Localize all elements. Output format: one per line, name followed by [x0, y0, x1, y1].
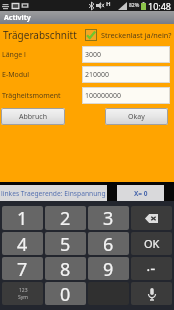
button[interactable]: 6 — [88, 232, 129, 255]
button[interactable]: 3000 — [82, 46, 170, 63]
staticText: 0 — [60, 282, 71, 305]
staticText: Sym — [18, 294, 28, 301]
staticText: 4 — [17, 232, 28, 255]
button[interactable]: 0 — [45, 282, 86, 305]
staticText: 2 — [60, 206, 71, 230]
button[interactable]: 1 — [2, 206, 43, 230]
staticText: OK — [144, 236, 160, 251]
staticText: Abbruch — [19, 112, 47, 122]
staticText: 9 — [103, 257, 114, 280]
button[interactable]: Streckenlast ja/nein? — [85, 29, 174, 41]
staticText: 82% — [129, 2, 140, 9]
button[interactable]: Okay — [105, 108, 168, 125]
staticText: 210000 — [85, 70, 110, 80]
button[interactable]: X= 0 — [117, 185, 164, 201]
staticText: Trägerabschnitt — [3, 28, 77, 42]
staticText: Länge l — [2, 50, 26, 60]
staticText: 5 — [60, 232, 71, 255]
button[interactable]: 5 — [45, 232, 86, 255]
button[interactable]: 100000000 — [82, 87, 170, 104]
button[interactable]: Minus — [131, 257, 172, 280]
button[interactable]: 9 — [88, 257, 129, 280]
button[interactable]: linkes Traegerende: Einspannung — [0, 185, 107, 201]
button[interactable]: Abbruch — [1, 108, 65, 125]
staticText: H — [106, 0, 111, 8]
staticText: Okay — [128, 112, 145, 122]
staticText: 6 — [103, 232, 114, 255]
button[interactable]: 3 — [88, 206, 129, 230]
staticText: 10:48 — [148, 0, 172, 11]
staticText: E-Modul — [2, 70, 30, 80]
staticText: 7 — [17, 257, 28, 280]
staticText: 3 — [103, 206, 114, 230]
staticText: 8 — [60, 257, 71, 280]
button[interactable]: Symbols — [2, 282, 43, 305]
button[interactable]: Voice input — [131, 282, 172, 305]
staticText: 1 — [17, 206, 28, 230]
staticText: Streckenlast ja/nein? — [101, 30, 172, 40]
button[interactable]: Backspace — [131, 206, 172, 230]
staticText: Trägheitsmoment — [2, 91, 61, 101]
button[interactable]: 210000 — [82, 66, 170, 83]
staticText: 100000000 — [85, 91, 122, 101]
staticText: linkes Traegerende: Einspannung — [1, 189, 106, 198]
staticText: 123 — [19, 287, 28, 294]
button[interactable]: 7 — [2, 257, 43, 280]
button[interactable]: 8 — [45, 257, 86, 280]
button[interactable]: 2 — [45, 206, 86, 230]
staticText: Activity — [4, 13, 31, 23]
staticText: X= 0 — [134, 189, 148, 198]
staticText: 3000 — [85, 50, 102, 60]
button[interactable]: OK — [131, 232, 172, 255]
button[interactable]: 4 — [2, 232, 43, 255]
